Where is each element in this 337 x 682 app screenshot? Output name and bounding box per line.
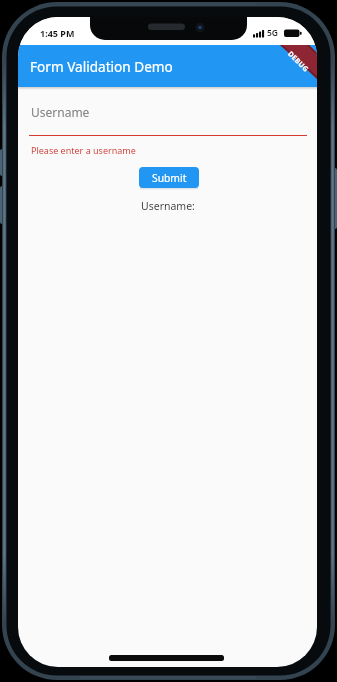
staticText: 5G	[267, 27, 279, 39]
button[interactable]: Username	[29, 97, 307, 137]
staticText: DEBUG	[285, 49, 311, 75]
staticText: Form Validation Demo	[30, 57, 173, 76]
staticText: Username	[31, 104, 90, 120]
staticText: Username:	[141, 199, 195, 213]
staticText: Please enter a username	[31, 144, 136, 156]
staticText: Submit	[152, 171, 187, 185]
staticText: 1:45 PM	[40, 27, 75, 39]
button[interactable]: Submit	[139, 167, 199, 188]
